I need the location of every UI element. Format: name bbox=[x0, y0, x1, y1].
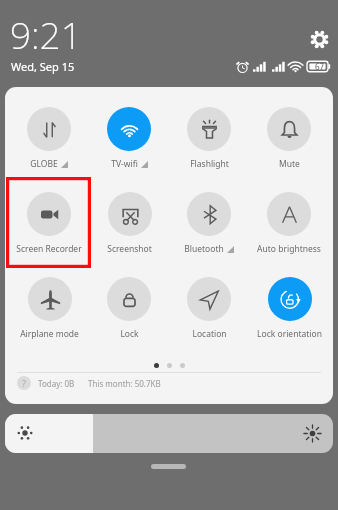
button[interactable]: Settings bbox=[311, 31, 328, 48]
button[interactable]: Screen Recorder bbox=[9, 192, 89, 258]
staticText: 67 bbox=[315, 61, 325, 72]
staticText: Mute bbox=[279, 158, 300, 170]
button[interactable]: Auto brightness bbox=[249, 192, 329, 258]
staticText: Today: 0B bbox=[38, 378, 75, 389]
button[interactable]: ? bbox=[17, 374, 161, 392]
staticText: GLOBE bbox=[30, 158, 58, 170]
staticText: Screenshot bbox=[107, 243, 152, 255]
staticText: Lock bbox=[120, 328, 139, 340]
staticText: ? bbox=[22, 377, 26, 389]
staticText: Location bbox=[192, 328, 227, 340]
button[interactable]: Bluetooth bbox=[169, 192, 249, 258]
button[interactable]: Flashlight bbox=[169, 107, 249, 173]
staticText: Wed, Sep 15 bbox=[11, 59, 75, 74]
button[interactable]: Screenshot bbox=[89, 192, 169, 258]
staticText: Auto brightness bbox=[257, 243, 321, 255]
staticText: 9:21 bbox=[10, 9, 82, 59]
staticText: Screen Recorder bbox=[16, 243, 82, 255]
button[interactable]: Lock bbox=[89, 277, 169, 343]
button[interactable]: TV-wifi bbox=[89, 107, 169, 173]
button[interactable]: GLOBE bbox=[9, 107, 89, 173]
staticText: Lock orientation bbox=[257, 328, 322, 340]
button[interactable]: Airplane mode bbox=[9, 277, 89, 343]
staticText: This month: 50.7KB bbox=[88, 378, 161, 389]
button[interactable]: Brightness bbox=[5, 414, 333, 453]
button[interactable]: Mute bbox=[249, 107, 329, 173]
button[interactable]: Lock orientation bbox=[249, 277, 329, 343]
staticText: Bluetooth bbox=[184, 243, 224, 255]
button[interactable]: Location bbox=[169, 277, 249, 343]
staticText: TV-wifi bbox=[111, 158, 138, 170]
staticText: Airplane mode bbox=[20, 328, 79, 340]
staticText: Flashlight bbox=[190, 158, 229, 170]
